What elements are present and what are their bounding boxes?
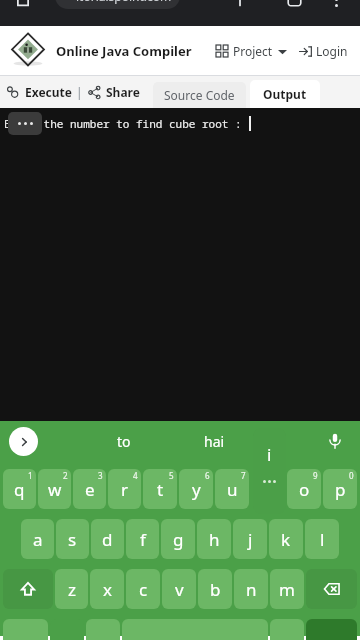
staticText: Output xyxy=(263,86,307,102)
button[interactable]: k xyxy=(269,519,303,559)
button[interactable]: New tab xyxy=(226,0,254,12)
button[interactable]: Tabs xyxy=(280,0,308,12)
button[interactable]: Login xyxy=(297,35,350,67)
staticText: g xyxy=(173,528,184,551)
staticText: 5 xyxy=(169,470,174,481)
button[interactable]: e xyxy=(73,469,106,509)
staticText: v xyxy=(175,578,184,601)
button[interactable]: Enter xyxy=(306,619,357,640)
staticText: 6 xyxy=(205,470,210,481)
staticText: | xyxy=(76,84,83,100)
button[interactable]: x xyxy=(90,569,124,609)
staticText: n xyxy=(246,578,257,601)
staticText: h xyxy=(209,528,220,551)
button[interactable]: v xyxy=(162,569,196,609)
button[interactable]: z xyxy=(55,569,88,609)
staticText: 2 xyxy=(63,470,68,481)
button[interactable]: Output xyxy=(250,80,320,108)
button[interactable]: Expand toolbar xyxy=(9,427,38,456)
staticText: Enter the number to find cube root : xyxy=(4,116,249,131)
button[interactable]: m xyxy=(270,569,304,609)
button[interactable]: g xyxy=(161,519,195,559)
button[interactable]: p xyxy=(323,469,357,509)
button[interactable]: f xyxy=(126,519,159,559)
staticText: c xyxy=(139,578,148,601)
button[interactable] xyxy=(251,469,285,511)
button[interactable]: q xyxy=(3,469,36,509)
button[interactable]: Source Code xyxy=(153,82,246,108)
staticText: 7 xyxy=(241,470,246,481)
button[interactable]: c xyxy=(126,569,160,609)
button[interactable]: u xyxy=(215,469,249,509)
button[interactable]: t xyxy=(143,469,177,509)
staticText: to xyxy=(117,432,131,451)
button[interactable]: r xyxy=(108,469,141,509)
staticText: 4 xyxy=(133,470,138,481)
staticText: x xyxy=(103,578,112,601)
button[interactable]: Voice input xyxy=(321,427,349,455)
staticText: e xyxy=(85,478,95,501)
button[interactable]: b xyxy=(198,569,232,609)
button[interactable]: w xyxy=(38,469,71,509)
button[interactable]: hai xyxy=(174,421,254,461)
staticText: t xyxy=(157,478,164,501)
button[interactable]: i key popup xyxy=(253,428,286,514)
button[interactable]: Project xyxy=(214,35,289,67)
button[interactable]: Backspace xyxy=(306,569,357,609)
button[interactable]: Period xyxy=(270,619,304,640)
staticText: o xyxy=(299,478,310,501)
staticText: Login xyxy=(316,43,348,59)
button[interactable]: Comma xyxy=(86,619,120,640)
button[interactable]: More options xyxy=(322,0,350,12)
button[interactable]: a xyxy=(21,519,54,559)
button[interactable]: s xyxy=(56,519,89,559)
staticText: m xyxy=(279,578,295,601)
button[interactable]: n xyxy=(234,569,268,609)
staticText: hai xyxy=(204,432,225,451)
staticText: j xyxy=(248,528,253,551)
staticText: w xyxy=(48,478,62,501)
button[interactable]: o xyxy=(287,469,321,509)
staticText: r xyxy=(121,478,129,501)
button[interactable]: Downloads xyxy=(10,0,36,13)
staticText: a xyxy=(33,528,43,551)
staticText: 9 xyxy=(313,470,318,481)
staticText: y xyxy=(192,478,201,501)
staticText: u xyxy=(227,478,238,501)
staticText: Share xyxy=(106,84,140,100)
staticText: 3 xyxy=(98,470,103,481)
staticText: k xyxy=(281,528,291,551)
button[interactable]: Text selection menu xyxy=(8,112,42,135)
button[interactable]: itorialspoint.com xyxy=(55,0,180,9)
staticText: f xyxy=(140,528,146,551)
button[interactable]: h xyxy=(197,519,231,559)
staticText: 0 xyxy=(349,470,354,481)
button[interactable]: Shift xyxy=(3,569,53,609)
staticText: b xyxy=(210,578,221,601)
button[interactable]: l xyxy=(305,519,339,559)
staticText: Execute xyxy=(25,84,72,100)
button[interactable]: d xyxy=(91,519,124,559)
button[interactable]: Execute xyxy=(0,76,76,108)
staticText: p xyxy=(335,478,346,501)
staticText: s xyxy=(68,528,77,551)
staticText: d xyxy=(102,528,113,551)
staticText: 1 xyxy=(28,470,33,481)
staticText: l xyxy=(320,528,325,551)
staticText: z xyxy=(68,578,76,601)
button[interactable]: Symbols xyxy=(3,619,48,640)
staticText: itorialspoint.com xyxy=(76,0,172,4)
button[interactable]: Share xyxy=(83,76,145,108)
staticText: Online Java Compiler xyxy=(56,42,192,60)
staticText: q xyxy=(14,478,25,501)
staticText: i xyxy=(267,443,272,466)
button[interactable]: to xyxy=(84,421,164,461)
button[interactable]: j xyxy=(233,519,267,559)
staticText: Project xyxy=(233,43,273,59)
staticText: Source Code xyxy=(164,87,235,103)
button[interactable]: y xyxy=(179,469,213,509)
